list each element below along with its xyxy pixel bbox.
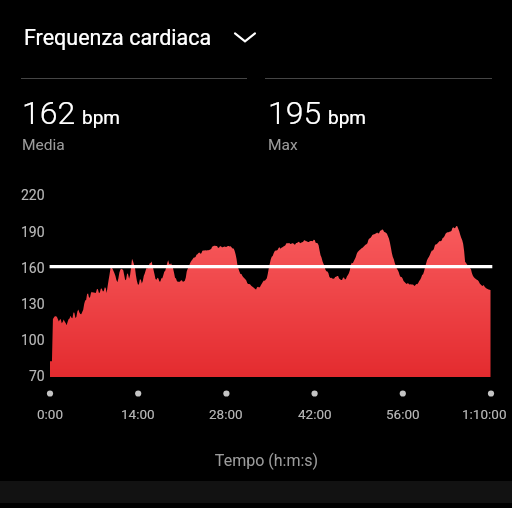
staticText: 100: [21, 332, 45, 348]
staticText: Tempo (h:m:s): [21, 451, 512, 470]
staticText: Max: [268, 136, 298, 154]
staticText: 160: [21, 260, 45, 276]
button[interactable]: 162: [22, 94, 120, 154]
staticText: Frequenza cardiaca: [24, 25, 212, 50]
staticText: 190: [21, 224, 45, 240]
staticText: 28:00: [209, 406, 243, 422]
staticText: bpm: [82, 106, 120, 128]
staticText: 42:00: [298, 406, 332, 422]
staticText: bpm: [328, 106, 366, 128]
staticText: 220: [21, 187, 45, 203]
staticText: 70: [29, 368, 45, 384]
button[interactable]: 195: [268, 94, 366, 154]
button[interactable]: Frequenza cardiaca: [10, 16, 268, 58]
staticText: Media: [22, 136, 65, 154]
staticText: 1:10:00: [462, 406, 507, 422]
staticText: 130: [21, 296, 45, 312]
staticText: 56:00: [386, 406, 420, 422]
staticText: 14:00: [121, 406, 155, 422]
staticText: 162: [22, 94, 76, 132]
other: Expand: [232, 24, 258, 50]
staticText: 0:00: [37, 406, 64, 422]
staticText: 195: [268, 94, 322, 132]
